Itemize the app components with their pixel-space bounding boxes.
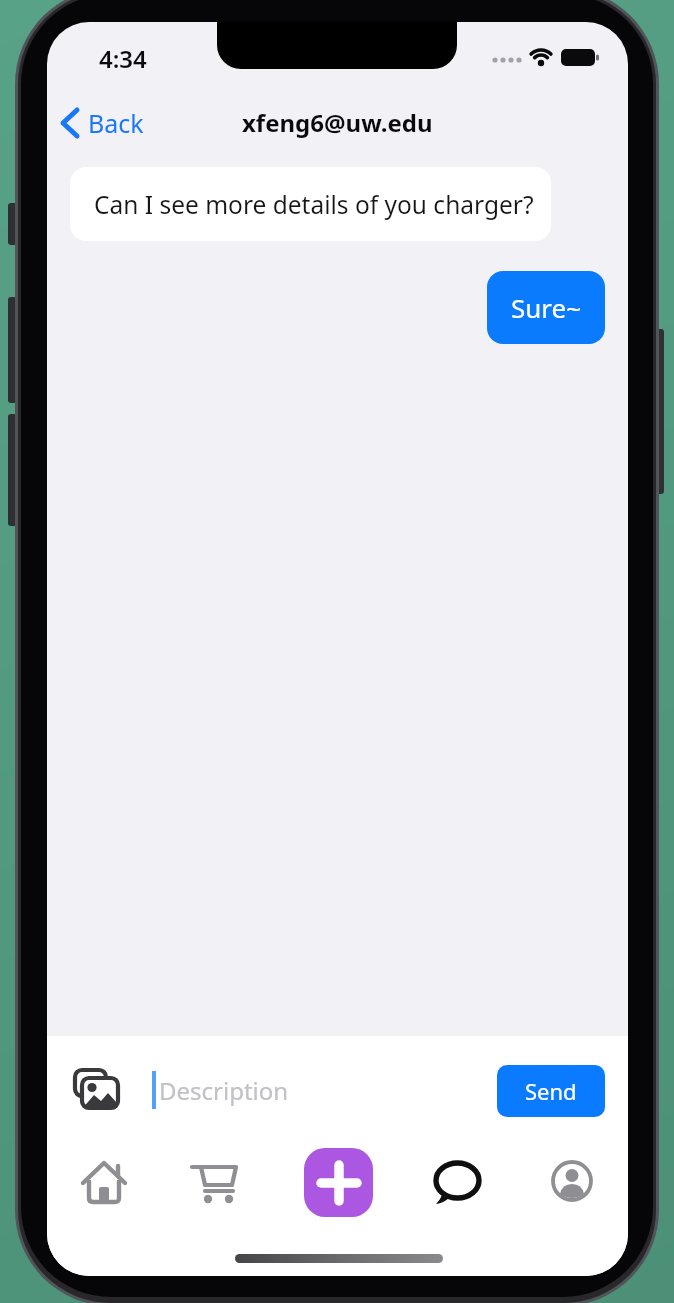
button[interactable] bbox=[78, 1154, 130, 1208]
staticText: Description bbox=[159, 1074, 289, 1107]
staticText: Sure~ bbox=[511, 290, 582, 325]
button[interactable] bbox=[431, 1154, 483, 1208]
button[interactable]: Back bbox=[57, 106, 167, 140]
button[interactable] bbox=[304, 1148, 373, 1217]
button[interactable]: Send bbox=[497, 1065, 605, 1117]
button[interactable]: Can I see more details of you charger? bbox=[70, 167, 551, 241]
button[interactable] bbox=[188, 1154, 240, 1208]
button[interactable] bbox=[71, 1068, 121, 1114]
staticText: xfeng6@uw.edu bbox=[242, 106, 433, 139]
staticText: 4:34 bbox=[99, 42, 147, 72]
button[interactable]: Sure~ bbox=[487, 271, 605, 344]
staticText: Send bbox=[525, 1076, 577, 1106]
staticText: Can I see more details of you charger? bbox=[94, 188, 534, 221]
staticText: Back bbox=[88, 106, 144, 140]
button[interactable] bbox=[546, 1154, 598, 1208]
button[interactable]: Description bbox=[159, 1069, 479, 1111]
